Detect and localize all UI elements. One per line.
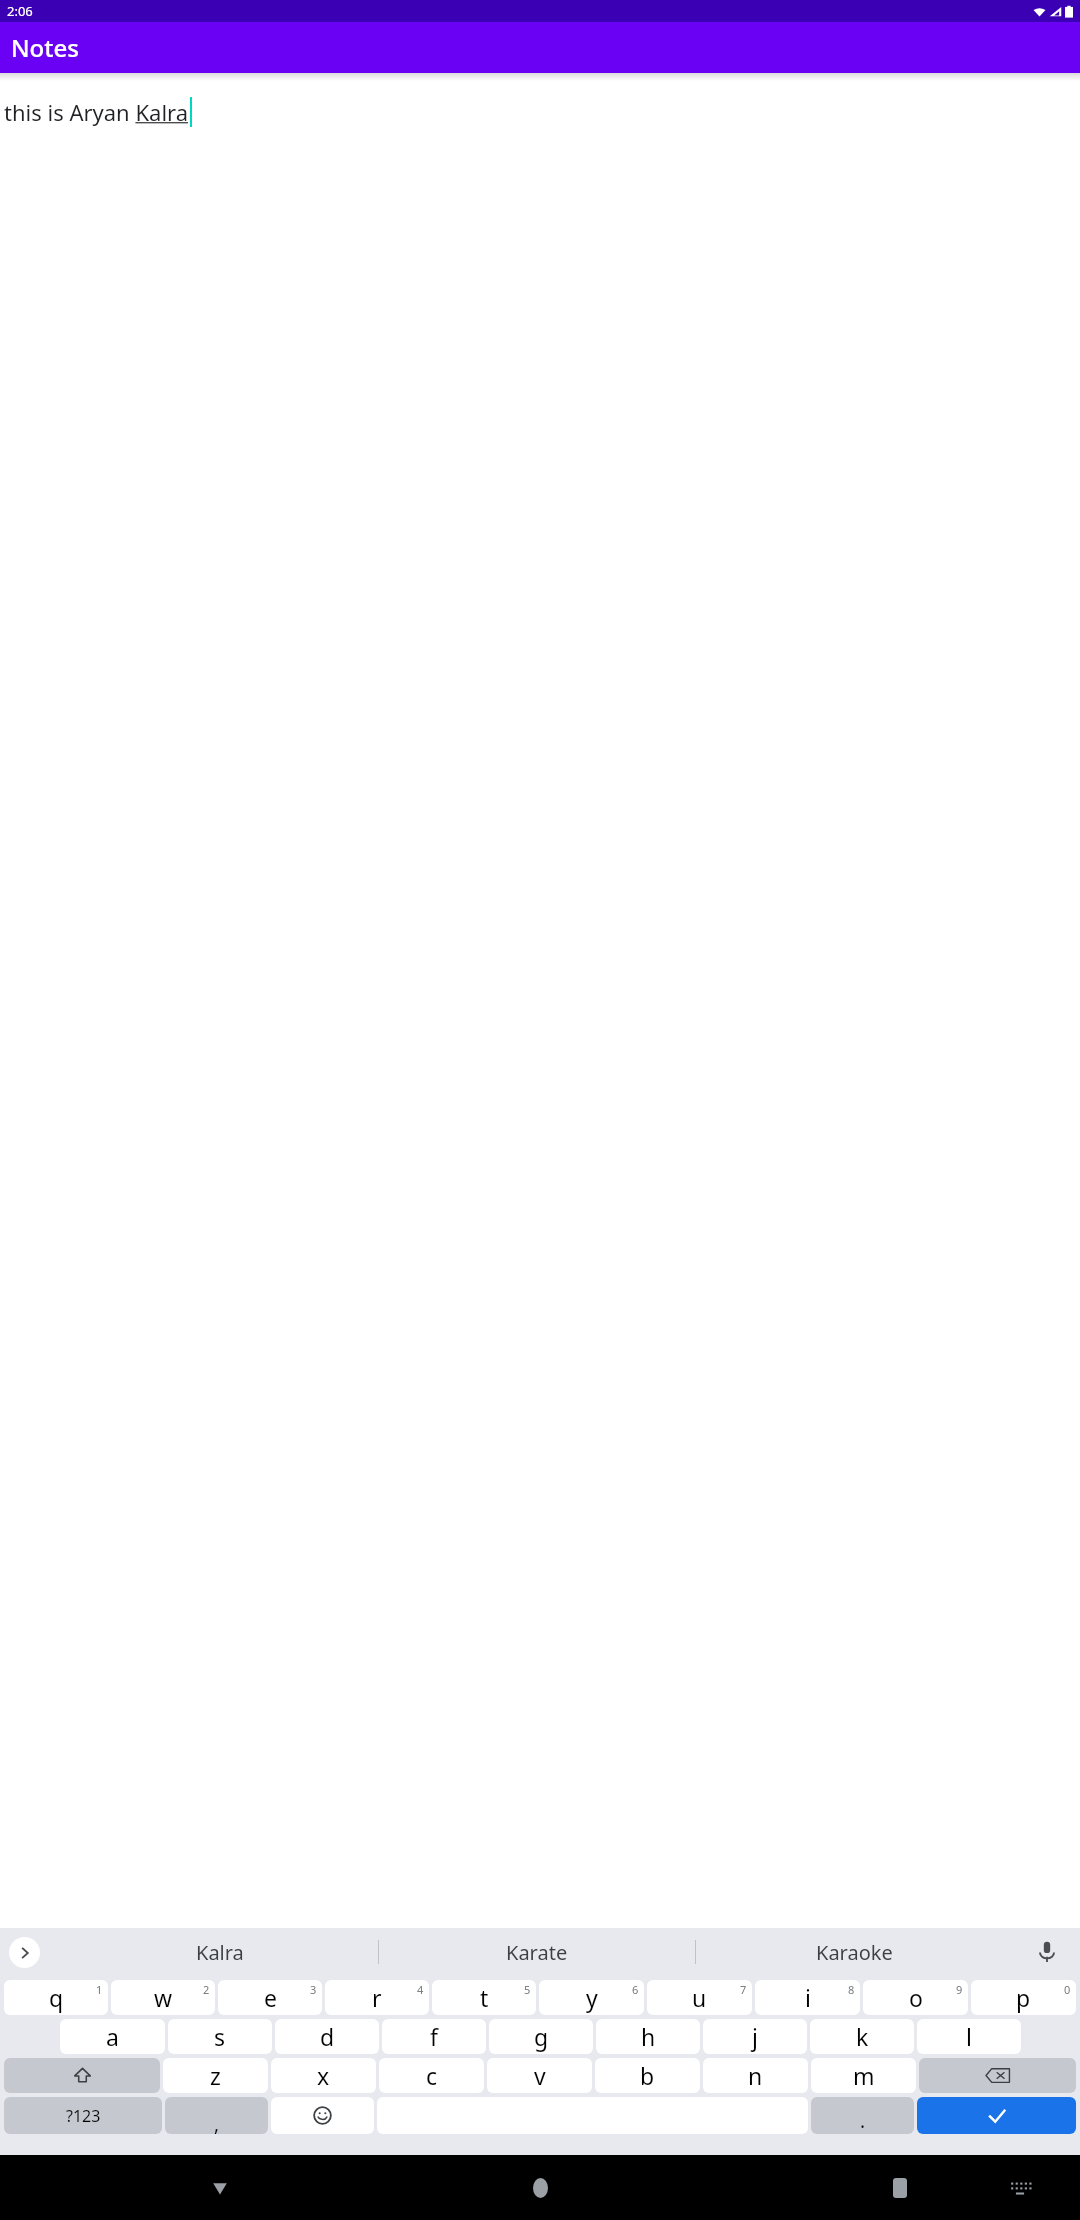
staticText: s	[214, 2021, 226, 2052]
button[interactable]: Hide keyboard	[180, 2155, 260, 2220]
staticText: 0	[1064, 1982, 1071, 1997]
staticText: Kalra	[196, 1939, 244, 1966]
staticText: ?123	[66, 2105, 101, 2127]
button[interactable]: f	[382, 2019, 486, 2054]
staticText: m	[853, 2060, 875, 2091]
staticText: u	[692, 1982, 707, 2013]
staticText: .	[860, 2108, 866, 2134]
staticText: b	[640, 2060, 655, 2091]
button[interactable]: y	[539, 1980, 644, 2015]
staticText: r	[372, 1982, 382, 2013]
staticText: p	[1016, 1982, 1031, 2013]
button[interactable]: l	[917, 2019, 1021, 2054]
staticText: 4	[417, 1982, 424, 1997]
button[interactable]: Home	[500, 2155, 580, 2220]
button[interactable]: k	[810, 2019, 914, 2054]
staticText: 9	[956, 1982, 963, 1997]
staticText: 6	[632, 1982, 639, 1997]
staticText: h	[641, 2021, 656, 2052]
staticText: d	[320, 2021, 335, 2052]
button[interactable]: Switch keyboard	[990, 2155, 1050, 2220]
button[interactable]: a	[60, 2019, 165, 2054]
staticText: a	[106, 2021, 119, 2052]
staticText: f	[430, 2021, 438, 2052]
staticText: t	[480, 1982, 489, 2013]
staticText: e	[264, 1982, 277, 2013]
button[interactable]: h	[596, 2019, 700, 2054]
button[interactable]: q	[4, 1980, 108, 2015]
staticText: 8	[848, 1982, 855, 1997]
staticText: g	[534, 2021, 549, 2052]
staticText: k	[856, 2021, 869, 2052]
staticText: n	[748, 2060, 763, 2091]
staticText: 1	[96, 1982, 103, 1997]
button[interactable]: m	[811, 2058, 916, 2093]
button[interactable]: j	[703, 2019, 807, 2054]
button[interactable]: w	[111, 1980, 215, 2015]
button[interactable]: Enter	[917, 2097, 1076, 2134]
staticText: y	[586, 1982, 598, 2013]
staticText: ,	[214, 2111, 220, 2134]
staticText: Karaoke	[816, 1939, 893, 1966]
button[interactable]: v	[487, 2058, 592, 2093]
button[interactable]: x	[271, 2058, 376, 2093]
button[interactable]: i	[755, 1980, 860, 2015]
staticText: c	[426, 2060, 438, 2091]
button[interactable]: s	[168, 2019, 272, 2054]
staticText: z	[210, 2060, 221, 2091]
button[interactable]: r	[325, 1980, 429, 2015]
button[interactable]: z	[163, 2058, 268, 2093]
button[interactable]: u	[647, 1980, 752, 2015]
staticText: Notes	[11, 31, 79, 64]
button[interactable]: Recents	[860, 2155, 940, 2220]
button[interactable]: Karaoke	[696, 1928, 1012, 1976]
button[interactable]: ,	[165, 2097, 268, 2134]
button[interactable]: n	[703, 2058, 808, 2093]
staticText: l	[966, 2021, 972, 2052]
staticText: 5	[524, 1982, 531, 1997]
staticText: w	[154, 1982, 173, 2013]
button[interactable]: More suggestions	[9, 1937, 40, 1968]
button[interactable]: Voice input	[1028, 1933, 1066, 1971]
staticText: Karate	[506, 1939, 568, 1966]
button[interactable]: Emoji	[271, 2097, 374, 2134]
button[interactable]: .	[811, 2097, 914, 2134]
button[interactable]: t	[432, 1980, 536, 2015]
staticText: q	[49, 1982, 64, 2013]
staticText: this is Aryan Kalra	[4, 97, 189, 127]
button[interactable]: e	[218, 1980, 322, 2015]
button[interactable]: g	[489, 2019, 593, 2054]
staticText: o	[909, 1982, 923, 2013]
staticText: j	[752, 2021, 758, 2052]
staticText: 2	[203, 1982, 210, 1997]
button[interactable]: ?123	[4, 2097, 162, 2134]
button[interactable]: p	[971, 1980, 1076, 2015]
button[interactable]: b	[595, 2058, 700, 2093]
staticText: 3	[310, 1982, 317, 1997]
button[interactable]: c	[379, 2058, 484, 2093]
button[interactable]: Kalra	[62, 1928, 378, 1976]
button[interactable]: Shift	[4, 2058, 160, 2093]
staticText: v	[534, 2060, 546, 2091]
staticText: i	[805, 1982, 811, 2013]
staticText: 7	[740, 1982, 747, 1997]
button[interactable]: d	[275, 2019, 379, 2054]
button[interactable]: o	[863, 1980, 968, 2015]
staticText: x	[317, 2060, 330, 2091]
button[interactable]: this is Aryan Kalra	[4, 97, 1080, 127]
button[interactable]: Backspace	[919, 2058, 1076, 2093]
staticText: 2:06	[7, 2, 33, 20]
button[interactable]: Karate	[379, 1928, 695, 1976]
